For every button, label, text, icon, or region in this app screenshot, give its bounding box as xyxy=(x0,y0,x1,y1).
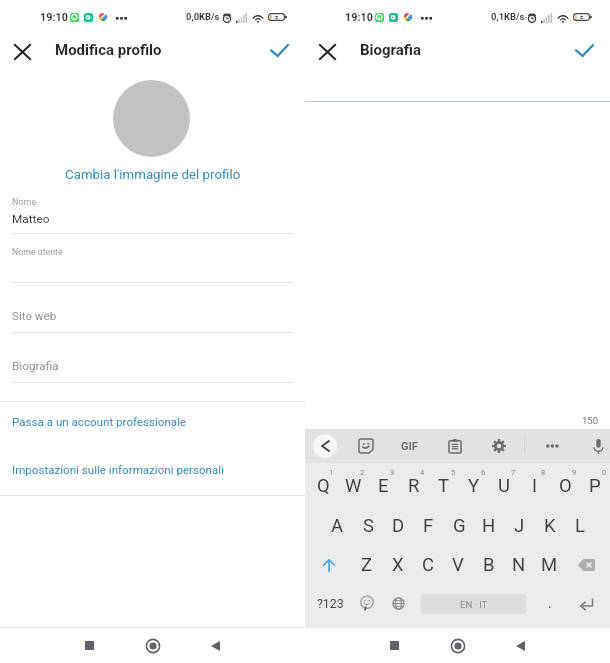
button[interactable]: Confirm xyxy=(568,34,600,66)
button[interactable]: B xyxy=(474,545,504,585)
button[interactable]: Confirm xyxy=(263,34,295,66)
staticText: Matteo xyxy=(12,212,50,226)
button[interactable]: Passa a un account professionale xyxy=(0,402,305,449)
button[interactable]: W xyxy=(338,465,368,507)
staticText: S xyxy=(363,515,374,537)
staticText: C xyxy=(422,554,435,576)
button[interactable]: V xyxy=(443,545,473,585)
staticText: G xyxy=(453,515,466,537)
staticText: D xyxy=(392,515,405,537)
staticText: 0,0KB/s xyxy=(186,11,220,22)
button[interactable]: Sticker xyxy=(354,434,378,458)
staticText: Passa a un account professionale xyxy=(12,415,187,429)
button[interactable]: X xyxy=(383,545,413,585)
staticText: Sito web xyxy=(12,309,57,323)
button[interactable]: Voice input xyxy=(586,434,610,458)
button[interactable]: L xyxy=(565,506,595,546)
button[interactable]: Recent apps xyxy=(73,628,106,663)
button[interactable]: A xyxy=(322,506,352,546)
staticText: J xyxy=(514,515,525,537)
button[interactable]: E xyxy=(368,465,398,507)
staticText: 8 xyxy=(541,468,546,477)
button[interactable]: R xyxy=(399,465,429,507)
button[interactable]: Profile photo xyxy=(113,80,190,157)
button[interactable]: N xyxy=(504,545,534,585)
staticText: A xyxy=(331,515,344,537)
button[interactable]: S xyxy=(353,506,383,546)
button[interactable]: GIF xyxy=(393,433,425,459)
button[interactable]: Z xyxy=(352,545,382,585)
button[interactable]: Y xyxy=(459,465,489,507)
button[interactable]: Backspace xyxy=(571,545,601,585)
button[interactable]: Enter xyxy=(571,583,601,623)
staticText: Z xyxy=(361,554,373,576)
button[interactable]: Clipboard xyxy=(443,434,467,458)
staticText: 19:10 xyxy=(40,11,68,24)
staticText: F xyxy=(423,515,434,537)
staticText: P xyxy=(589,475,601,497)
staticText: 5 xyxy=(451,468,456,477)
button[interactable]: Back xyxy=(313,434,337,458)
button[interactable]: Emoji xyxy=(354,583,380,623)
button[interactable]: EN · IT xyxy=(421,594,526,614)
staticText: 2 xyxy=(360,468,365,477)
button[interactable]: Home xyxy=(441,628,474,663)
button[interactable]: H xyxy=(474,506,504,546)
button[interactable]: M xyxy=(534,545,564,585)
button[interactable]: Home xyxy=(136,628,169,663)
staticText: Cambia l'immagine del profilo xyxy=(65,167,241,183)
staticText: Modifica profilo xyxy=(55,41,162,59)
button[interactable]: Back xyxy=(199,628,232,663)
button[interactable]: Impostazioni sulle informazioni personal… xyxy=(0,449,305,495)
button[interactable]: Nome xyxy=(0,193,305,234)
staticText: EN · IT xyxy=(460,599,488,610)
button[interactable]: Nome utente xyxy=(0,243,305,282)
staticText: L xyxy=(575,515,585,537)
button[interactable]: P xyxy=(580,465,610,507)
button[interactable]: C xyxy=(413,545,443,585)
staticText: Biografia xyxy=(360,41,422,59)
staticText: 19:10 xyxy=(345,11,373,24)
staticText: M xyxy=(541,554,558,576)
staticText: O xyxy=(559,475,572,497)
staticText: U xyxy=(498,475,510,497)
button[interactable]: Settings xyxy=(487,434,511,458)
staticText: 4 xyxy=(420,468,425,477)
staticText: V xyxy=(452,554,464,576)
staticText: Nome xyxy=(12,197,37,208)
staticText: 6 xyxy=(481,468,486,477)
button[interactable]: Recent apps xyxy=(378,628,411,663)
button[interactable]: G xyxy=(444,506,474,546)
button[interactable]: K xyxy=(535,506,565,546)
button[interactable]: J xyxy=(504,506,534,546)
staticText: X xyxy=(392,554,404,576)
button[interactable]: . xyxy=(537,583,563,623)
button[interactable]: F xyxy=(413,506,443,546)
staticText: 0 xyxy=(602,468,607,477)
button[interactable]: More options xyxy=(541,435,563,457)
button[interactable]: Cambia l'immagine del profilo xyxy=(0,164,305,186)
staticText: Y xyxy=(468,475,480,497)
staticText: N xyxy=(512,554,526,576)
button[interactable]: Back xyxy=(504,628,537,663)
staticText: E xyxy=(378,475,389,497)
button[interactable]: T xyxy=(429,465,459,507)
staticText: Q xyxy=(317,475,330,497)
staticText: 9 xyxy=(572,468,577,477)
button[interactable]: D xyxy=(383,506,413,546)
button[interactable]: Sito web xyxy=(0,300,305,333)
button[interactable]: Close xyxy=(311,36,343,68)
button[interactable]: O xyxy=(550,465,580,507)
button[interactable]: I xyxy=(520,465,550,507)
button[interactable]: Change language xyxy=(384,583,412,623)
button[interactable]: Close xyxy=(6,36,38,68)
staticText: Impostazioni sulle informazioni personal… xyxy=(12,463,224,477)
staticText: GIF xyxy=(401,440,418,453)
button[interactable]: Shift xyxy=(314,545,344,585)
button[interactable]: U xyxy=(489,465,519,507)
button[interactable]: Biografia xyxy=(0,350,305,383)
button[interactable]: Q xyxy=(308,465,338,507)
staticText: K xyxy=(544,515,556,537)
button[interactable]: ?123 xyxy=(312,583,348,623)
staticText: 1 xyxy=(329,468,334,477)
